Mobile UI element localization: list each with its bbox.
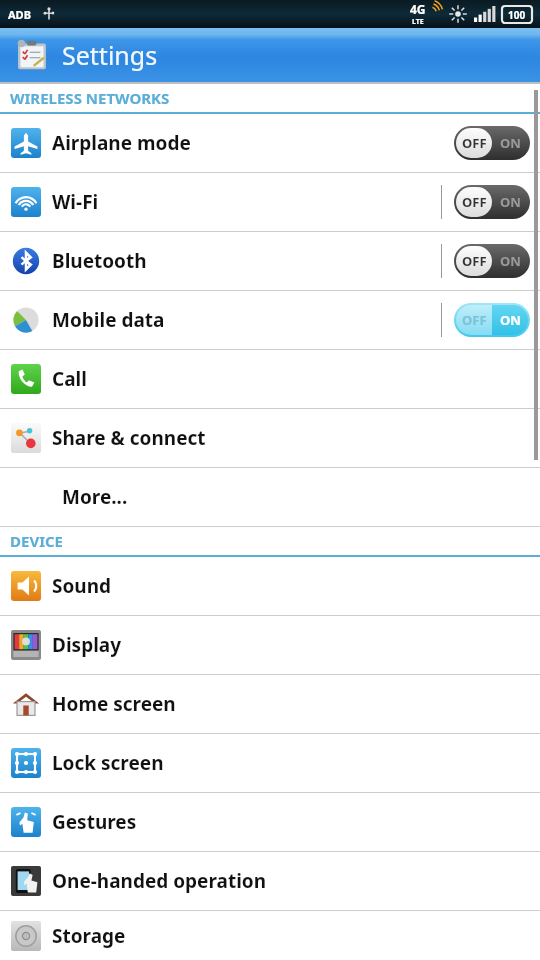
staticText: Wi-Fi: [52, 189, 99, 215]
staticText: OFF: [462, 311, 487, 329]
staticText: Settings: [62, 38, 158, 72]
staticText: Share & connect: [52, 425, 206, 451]
button[interactable]: Home screen: [0, 675, 540, 733]
staticText: LTE: [412, 17, 424, 27]
button[interactable]: OFF: [454, 185, 530, 219]
button[interactable]: OFF: [454, 303, 530, 337]
button[interactable]: Storage: [0, 911, 540, 960]
staticText: Mobile data: [52, 307, 165, 333]
button[interactable]: Share & connect: [0, 409, 540, 467]
button[interactable]: Call: [0, 350, 540, 408]
staticText: Storage: [52, 923, 126, 949]
button[interactable]: Display: [0, 616, 540, 674]
staticText: Sound: [52, 573, 112, 599]
staticText: ON: [500, 193, 521, 211]
staticText: OFF: [462, 193, 487, 211]
button[interactable]: One-handed operation: [0, 852, 540, 910]
staticText: ON: [500, 311, 521, 329]
button[interactable]: More...: [0, 468, 540, 526]
staticText: WIRELESS NETWORKS: [10, 88, 170, 108]
staticText: Call: [52, 366, 87, 392]
button[interactable]: OFF: [454, 126, 530, 160]
staticText: Display: [52, 632, 122, 658]
button[interactable]: Bluetooth: [0, 232, 540, 290]
staticText: DEVICE: [10, 531, 63, 551]
button[interactable]: Mobile data: [0, 291, 540, 349]
staticText: Airplane mode: [52, 130, 191, 156]
staticText: Lock screen: [52, 750, 164, 776]
button[interactable]: Lock screen: [0, 734, 540, 792]
staticText: OFF: [462, 252, 487, 270]
staticText: ADB: [8, 7, 31, 22]
staticText: Home screen: [52, 691, 176, 717]
staticText: ON: [500, 134, 521, 152]
button[interactable]: OFF: [454, 244, 530, 278]
staticText: Bluetooth: [52, 248, 147, 274]
staticText: Gestures: [52, 809, 137, 835]
staticText: 100: [508, 8, 526, 22]
staticText: More...: [62, 484, 128, 510]
staticText: OFF: [462, 134, 487, 152]
staticText: ON: [500, 252, 521, 270]
button[interactable]: Wi-Fi: [0, 173, 540, 231]
staticText: One-handed operation: [52, 868, 267, 894]
button[interactable]: Gestures: [0, 793, 540, 851]
button[interactable]: Sound: [0, 557, 540, 615]
staticText: 4G: [410, 1, 426, 17]
button[interactable]: Airplane mode: [0, 114, 540, 172]
